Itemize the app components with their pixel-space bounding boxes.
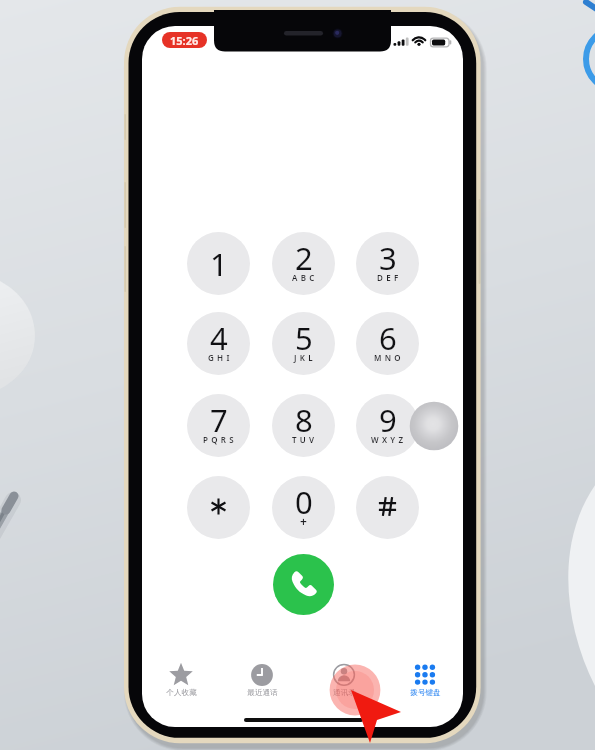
staticText: 9 [379, 399, 397, 441]
staticText: 个人收藏 [166, 688, 197, 698]
staticText: 拨号键盘 [410, 688, 441, 698]
staticText: D E F [377, 272, 399, 283]
staticText: 3 [379, 237, 397, 279]
button[interactable]: 拨号键盘 [389, 662, 461, 706]
staticText: J K L [294, 352, 314, 363]
staticText: A B C [292, 272, 315, 283]
staticText: 4 [210, 317, 228, 359]
staticText: 1 [210, 243, 228, 285]
button[interactable]: 最近通话 [226, 662, 298, 706]
staticText: M N O [374, 352, 402, 363]
staticText: T U V [292, 434, 315, 445]
staticText: 6 [379, 317, 397, 359]
staticText: 5 [295, 317, 313, 359]
button[interactable]: 1 [187, 232, 250, 295]
staticText: 15:26 [170, 33, 199, 48]
button[interactable]: 3 [356, 232, 419, 295]
button[interactable]: 6 [356, 312, 419, 375]
staticText: G H I [208, 352, 230, 363]
button[interactable]: 通讯录 [308, 662, 380, 706]
staticText: 7 [210, 399, 228, 441]
staticText: 0 [295, 481, 313, 523]
staticText: P Q R S [203, 434, 235, 445]
staticText: 最近通话 [247, 688, 278, 698]
staticText: + [300, 513, 308, 529]
button[interactable]: 5 [272, 312, 335, 375]
button[interactable]: Call [273, 554, 334, 615]
other: AssistiveTouch [408, 400, 460, 452]
button[interactable] [356, 476, 419, 539]
staticText: 通讯录 [333, 688, 356, 698]
button[interactable]: 4 [187, 312, 250, 375]
staticText: W X Y Z [371, 434, 404, 445]
button[interactable] [187, 476, 250, 539]
button[interactable]: 0 [272, 476, 335, 539]
button[interactable]: 9 [356, 394, 419, 457]
staticText: 8 [295, 399, 313, 441]
button[interactable]: 个人收藏 [145, 662, 217, 706]
button[interactable]: 8 [272, 394, 335, 457]
button[interactable]: 2 [272, 232, 335, 295]
button[interactable]: 7 [187, 394, 250, 457]
staticText: 2 [295, 237, 313, 279]
